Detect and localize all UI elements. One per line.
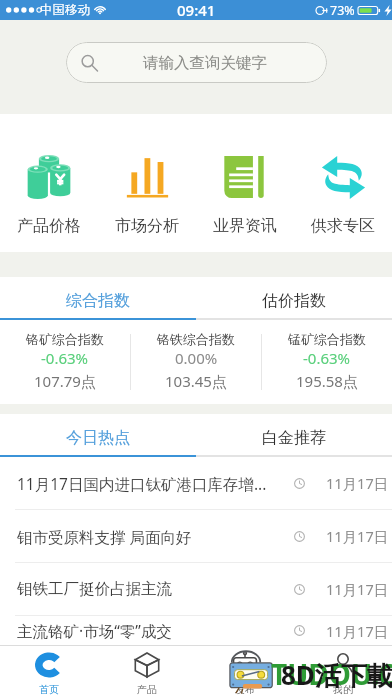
button[interactable]: 白金推荐 [196,421,392,455]
staticText: 产品 [137,683,157,696]
button[interactable]: 市场分析 [98,114,196,252]
button[interactable]: 铬铁综合指数 [131,320,261,404]
staticText: 107.79点 [34,371,96,391]
staticText: -0.63% [41,348,89,368]
staticText: 73% [330,2,355,19]
button[interactable]: 业界资讯 [196,114,294,252]
button[interactable]: 搜索 [66,42,327,83]
staticText: 发布 [235,683,255,696]
other: 搜索 [80,54,98,72]
staticText: 09:41 [177,0,216,20]
button[interactable]: 综合指数 [0,284,196,318]
button[interactable]: 铬矿综合指数 [0,320,130,404]
button[interactable]: 11月17日国内进口钛矿港口库存增... [0,457,392,509]
staticText: 请输入查询关键字 [143,53,267,73]
staticText: 11月17日 [326,526,389,546]
staticText: 供求专区 [311,216,375,236]
other: 市场分析 [126,156,169,199]
staticText: 钼市受原料支撑 局面向好 [17,526,286,547]
staticText: 钼铁工厂挺价占据主流 [17,579,286,599]
staticText: 业界资讯 [213,216,277,236]
staticText: 主流铬矿·市场“零”成交 [17,620,286,641]
other: 产品 [134,652,160,678]
staticText: 综合指数 [66,291,130,311]
button[interactable]: 估价指数 [196,284,392,318]
staticText: 铬矿综合指数 [26,331,104,347]
staticText: 估价指数 [262,291,326,311]
staticText: TUDOU.COM [271,655,392,693]
other: 产品价格 [27,155,71,199]
button[interactable]: 首页 [0,646,98,696]
button[interactable]: 钼市受原料支撑 局面向好 [0,510,392,562]
button[interactable]: 发布 [196,646,294,696]
staticText: 11月17日 [326,621,389,641]
button[interactable]: 供求专区 [294,114,392,252]
other: 供求专区 [321,155,366,200]
button[interactable]: 锰矿综合指数 [262,320,392,404]
button[interactable]: 产品 [98,646,196,696]
button[interactable]: 我的 [294,646,392,696]
staticText: 白金推荐 [262,428,326,448]
staticText: 铬铁综合指数 [157,331,235,347]
button[interactable]: 产品价格 [0,114,98,252]
other: 首页 [35,652,63,678]
staticText: 11月17日 [326,579,389,599]
staticText: 11月17日国内进口钛矿港口库存增... [17,473,286,494]
staticText: 103.45点 [165,371,227,391]
button[interactable]: 钼铁工厂挺价占据主流 [0,563,392,615]
other: 我的 [330,652,356,678]
staticText: 中国移动 [40,2,90,18]
staticText: 今日热点 [66,428,130,448]
button[interactable]: 主流铬矿·市场“零”成交 [0,616,392,645]
other: 发布 [232,652,258,678]
staticText: 锰矿综合指数 [288,331,366,347]
button[interactable]: 今日热点 [0,421,196,455]
staticText: 195.58点 [296,371,358,391]
staticText: 8D活下載 [281,657,392,693]
staticText: 我的 [333,683,353,696]
staticText: 11月17日 [326,473,389,493]
staticText: 0.00% [175,348,218,368]
staticText: 市场分析 [115,216,179,236]
staticText: 产品价格 [17,216,81,236]
staticText: -0.63% [303,348,351,368]
staticText: 首页 [39,683,59,696]
other: 业界资讯 [223,155,267,199]
